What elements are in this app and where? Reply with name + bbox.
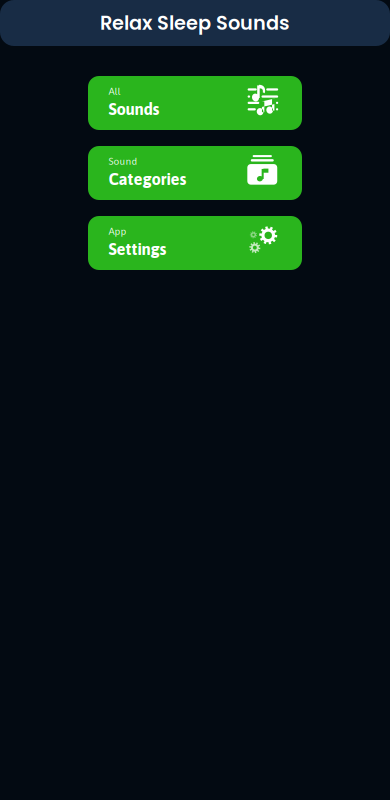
staticText: Settings	[108, 239, 166, 259]
button[interactable]: App	[88, 216, 302, 270]
button[interactable]: All	[88, 76, 302, 130]
staticText: Relax Sleep Sounds	[100, 9, 290, 37]
staticText: All	[108, 85, 120, 97]
button[interactable]: Sound	[88, 146, 302, 200]
staticText: Categories	[108, 169, 186, 189]
staticText: Sound	[108, 155, 137, 167]
staticText: Sounds	[108, 99, 159, 119]
staticText: App	[108, 225, 126, 237]
